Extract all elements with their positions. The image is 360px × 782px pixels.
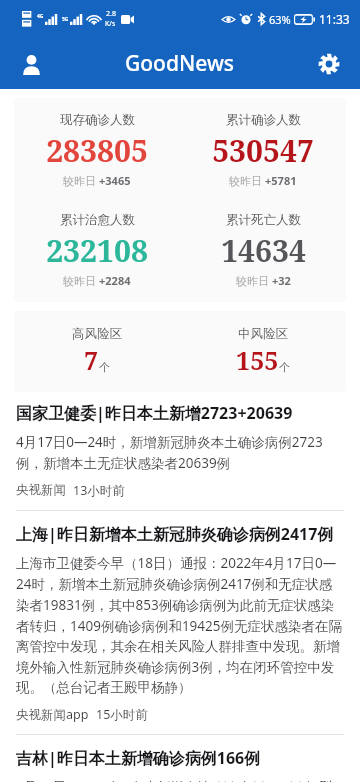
staticText: GoodNews (125, 49, 235, 78)
staticText: 4月17日0—24时，新增新冠肺炎本土确诊病例2723例，新增本土无症状感染者2… (16, 433, 344, 472)
staticText: 累计确诊人数 (226, 112, 301, 128)
staticText: 7 (84, 343, 99, 377)
button[interactable]: 国家卫健委|昨日本土新增2723+20639 (0, 402, 360, 510)
button[interactable]: 上海|昨日新增本土新冠肺炎确诊病例2417例 (0, 510, 360, 734)
staticText: 14634 (221, 230, 306, 271)
button[interactable]: Account (8, 41, 54, 87)
staticText: 13小时前 (73, 482, 125, 499)
staticText: 较昨日 (229, 174, 262, 188)
staticText: 吉林|昨日本土新增确诊病例166例 (16, 747, 261, 769)
staticText: 15小时前 (96, 706, 148, 723)
staticText: 上海|昨日新增本土新冠肺炎确诊病例2417例 (16, 523, 334, 545)
staticText: 较昨日 (236, 274, 269, 288)
staticText: 较昨日 (63, 274, 96, 288)
staticText: 中风险区 (238, 326, 288, 342)
button[interactable]: 现存确诊人数 (14, 98, 346, 302)
staticText: 4G (37, 13, 44, 20)
staticText: 较昨日 (63, 174, 96, 188)
button[interactable]: 吉林|昨日本土新增确诊病例166例 (0, 734, 360, 782)
staticText: +3465 (99, 173, 131, 188)
button[interactable]: 高风险区 (14, 311, 346, 392)
staticText: +5781 (265, 173, 297, 188)
staticText: 个 (279, 360, 290, 374)
staticText: 155 (236, 343, 279, 377)
staticText: 4月17日0—24时，全省新增本地确诊病例166例(轻型 (16, 778, 333, 782)
staticText: 530547 (212, 130, 314, 171)
staticText: K/s (105, 19, 116, 29)
staticText: 2.8 (106, 9, 116, 19)
staticText: 央视新闻app (16, 706, 89, 723)
button[interactable]: Settings (306, 41, 352, 87)
staticText: 国家卫健委|昨日本土新增2723+20639 (16, 402, 293, 424)
staticText: 上海市卫健委今早（18日）通报：2022年4月17日0—24时，新增本土新冠肺炎… (16, 554, 344, 696)
staticText: 个 (99, 360, 110, 374)
staticText: 累计治愈人数 (60, 212, 135, 228)
staticText: 央视新闻 (16, 482, 66, 498)
staticText: 283805 (46, 130, 148, 171)
staticText: 累计死亡人数 (226, 212, 301, 228)
staticText: 232108 (46, 230, 148, 271)
staticText: 11:33 (319, 11, 350, 27)
staticText: 现存确诊人数 (60, 112, 135, 128)
staticText: +2284 (99, 273, 131, 288)
staticText: 高风险区 (72, 326, 122, 342)
staticText: +32 (272, 273, 291, 288)
staticText: 63% (269, 12, 291, 27)
staticText: 5G (62, 16, 69, 23)
